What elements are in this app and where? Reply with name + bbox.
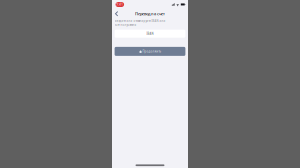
button[interactable]: Продолжить: [115, 47, 185, 56]
staticText: IBAN: [146, 32, 153, 35]
staticText: 9:41: [116, 3, 123, 6]
staticText: Продолжить: [142, 50, 160, 53]
staticText: Перевод на счет: [135, 11, 165, 16]
staticText: счет получателя: [115, 23, 137, 27]
staticText: Введите или отсканируйте IBAN или: [115, 19, 166, 23]
button[interactable]: Back: [113, 9, 121, 18]
